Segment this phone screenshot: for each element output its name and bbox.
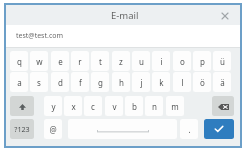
button[interactable]: h: [112, 72, 130, 92]
staticText: p: [200, 56, 205, 67]
button[interactable]: t: [91, 51, 109, 71]
staticText: ä: [220, 77, 225, 88]
staticText: q: [17, 56, 22, 67]
staticText: k: [159, 77, 164, 88]
button[interactable]: z: [112, 51, 130, 71]
button[interactable]: y: [44, 96, 62, 116]
staticText: ö: [200, 77, 205, 88]
button[interactable]: l: [173, 72, 191, 92]
button[interactable]: j: [132, 72, 150, 92]
button[interactable]: g: [91, 72, 109, 92]
staticText: .: [188, 124, 191, 135]
button[interactable]: Enter: [204, 119, 234, 139]
staticText: b: [132, 101, 137, 112]
staticText: ?123: [14, 124, 30, 134]
staticText: @: [49, 124, 57, 135]
staticText: v: [112, 101, 117, 112]
staticText: a: [17, 77, 22, 88]
staticText: x: [71, 101, 76, 112]
button[interactable]: d: [51, 72, 69, 92]
button[interactable]: i: [152, 51, 170, 71]
staticText: test@test.com: [16, 31, 64, 41]
button[interactable]: w: [30, 51, 48, 71]
button[interactable]: p: [193, 51, 211, 71]
staticText: u: [139, 56, 144, 67]
staticText: s: [37, 77, 41, 88]
button[interactable]: Backspace: [212, 96, 234, 116]
staticText: r: [78, 56, 82, 67]
button[interactable]: ü: [213, 51, 231, 71]
button[interactable]: Shift: [10, 96, 34, 116]
button[interactable]: x: [64, 96, 82, 116]
button[interactable]: .: [180, 119, 198, 139]
button[interactable]: @: [44, 119, 62, 139]
staticText: n: [152, 101, 157, 112]
staticText: e: [58, 56, 63, 67]
button[interactable]: n: [145, 96, 163, 116]
button[interactable]: u: [132, 51, 150, 71]
button[interactable]: e: [51, 51, 69, 71]
button[interactable]: c: [84, 96, 102, 116]
staticText: h: [119, 77, 124, 88]
button[interactable]: ö: [193, 72, 211, 92]
staticText: l: [181, 77, 184, 88]
staticText: z: [119, 56, 123, 67]
staticText: g: [98, 77, 103, 88]
staticText: c: [91, 101, 95, 112]
button[interactable]: ä: [213, 72, 231, 92]
button[interactable]: f: [71, 72, 89, 92]
button[interactable]: m: [166, 96, 184, 116]
button[interactable]: ?123: [10, 119, 34, 139]
staticText: o: [180, 56, 185, 67]
button[interactable]: r: [71, 51, 89, 71]
staticText: d: [58, 77, 63, 88]
staticText: m: [171, 101, 179, 112]
button[interactable]: b: [125, 96, 143, 116]
staticText: t: [99, 56, 102, 67]
staticText: E-mail: [111, 9, 139, 22]
button[interactable]: a: [10, 72, 28, 92]
button[interactable]: o: [173, 51, 191, 71]
staticText: f: [79, 77, 82, 88]
staticText: ü: [220, 56, 225, 67]
staticText: y: [51, 101, 56, 112]
button[interactable]: Close: [218, 9, 231, 22]
button[interactable]: v: [105, 96, 123, 116]
staticText: w: [36, 56, 43, 67]
button[interactable]: s: [30, 72, 48, 92]
button[interactable]: q: [10, 51, 28, 71]
staticText: i: [160, 56, 163, 67]
button[interactable]: Space: [68, 119, 177, 139]
button[interactable]: k: [152, 72, 170, 92]
staticText: j: [140, 77, 143, 88]
